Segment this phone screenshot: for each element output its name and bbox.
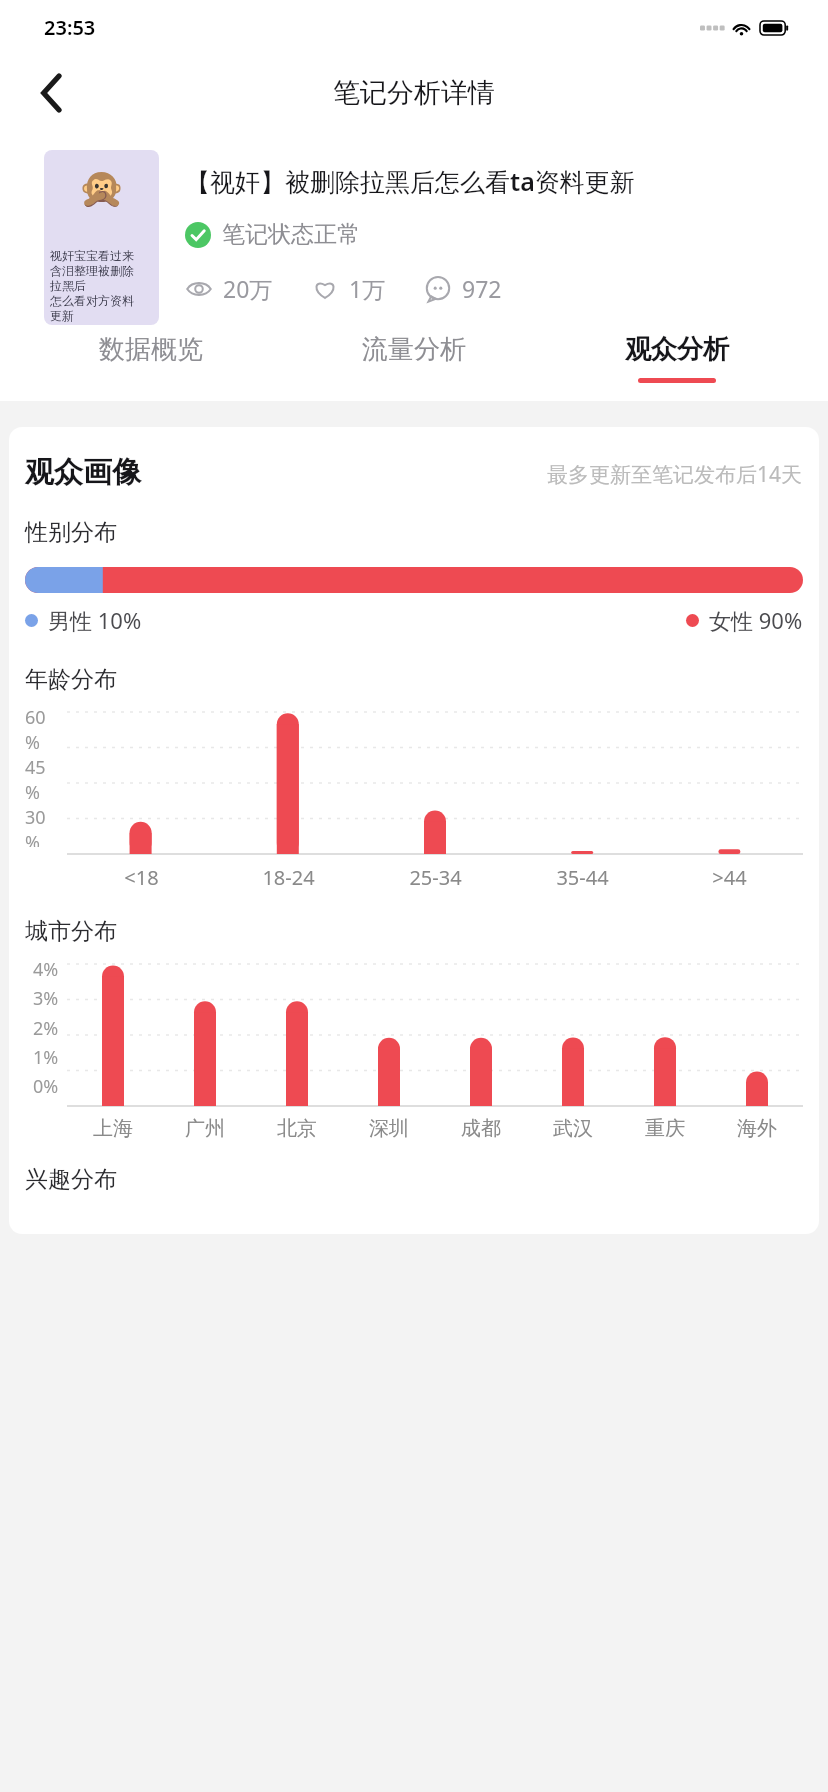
button[interactable]: 城市分布	[25, 917, 117, 946]
staticText: 视奸宝宝看过来	[50, 248, 134, 263]
staticText: 男性 10%	[48, 605, 142, 635]
button[interactable]: 972	[424, 273, 502, 304]
button[interactable]: 流量分析	[282, 325, 545, 401]
staticText: 流量分析	[362, 333, 466, 366]
staticText: 数据概览	[99, 333, 203, 366]
staticText: 深圳	[369, 1116, 409, 1141]
staticText: 笔记分析详情	[333, 76, 495, 110]
staticText: 观众画像	[25, 454, 141, 491]
staticText: 怎么看对方资料	[50, 293, 134, 308]
staticText: 2%	[33, 1016, 59, 1041]
staticText: 武汉	[553, 1116, 593, 1141]
staticText: 3%	[33, 986, 59, 1011]
staticText: 60%	[25, 705, 59, 755]
button[interactable]: 性别分布	[25, 518, 117, 547]
staticText: 23:53	[44, 14, 96, 41]
button[interactable]: Back	[26, 67, 78, 119]
staticText: 上海	[93, 1116, 133, 1141]
staticText: 30%	[25, 805, 59, 847]
button[interactable]: 1万	[311, 273, 386, 304]
button[interactable]: 观众分析	[545, 325, 808, 401]
staticText: 笔记状态正常	[222, 220, 360, 249]
staticText: <18	[124, 864, 159, 891]
staticText: 女性 90%	[709, 605, 803, 635]
staticText: 20万	[223, 273, 273, 304]
staticText: >44	[712, 864, 747, 891]
staticText: 1%	[33, 1045, 59, 1070]
staticText: 【视奸】被删除拉黑后怎么看ta资料更新	[185, 164, 635, 198]
staticText: 重庆	[645, 1116, 685, 1141]
staticText: 🙊	[78, 166, 126, 211]
staticText: 拉黑后	[50, 278, 86, 293]
staticText: 35-44	[556, 864, 609, 891]
staticText: 含泪整理被删除	[50, 263, 134, 278]
button[interactable]: 年龄分布	[25, 665, 117, 694]
staticText: 972	[462, 273, 502, 304]
staticText: 0%	[33, 1074, 59, 1099]
staticText: 4%	[33, 957, 59, 982]
staticText: 北京	[277, 1116, 317, 1141]
staticText: 广州	[185, 1116, 225, 1141]
button[interactable]: 兴趣分布	[25, 1165, 117, 1194]
button[interactable]: 🙊	[44, 150, 159, 325]
staticText: 观众分析	[625, 333, 729, 366]
staticText: 海外	[737, 1116, 777, 1141]
staticText: 最多更新至笔记发布后14天	[547, 460, 803, 489]
staticText: 1万	[349, 273, 386, 304]
staticText: 更新	[50, 308, 74, 323]
staticText: 18-24	[262, 864, 315, 891]
staticText: 25-34	[409, 864, 462, 891]
button[interactable]: 数据概览	[20, 325, 282, 401]
staticText: 成都	[461, 1116, 501, 1141]
button[interactable]: 20万	[185, 273, 273, 304]
staticText: 45%	[25, 755, 59, 805]
